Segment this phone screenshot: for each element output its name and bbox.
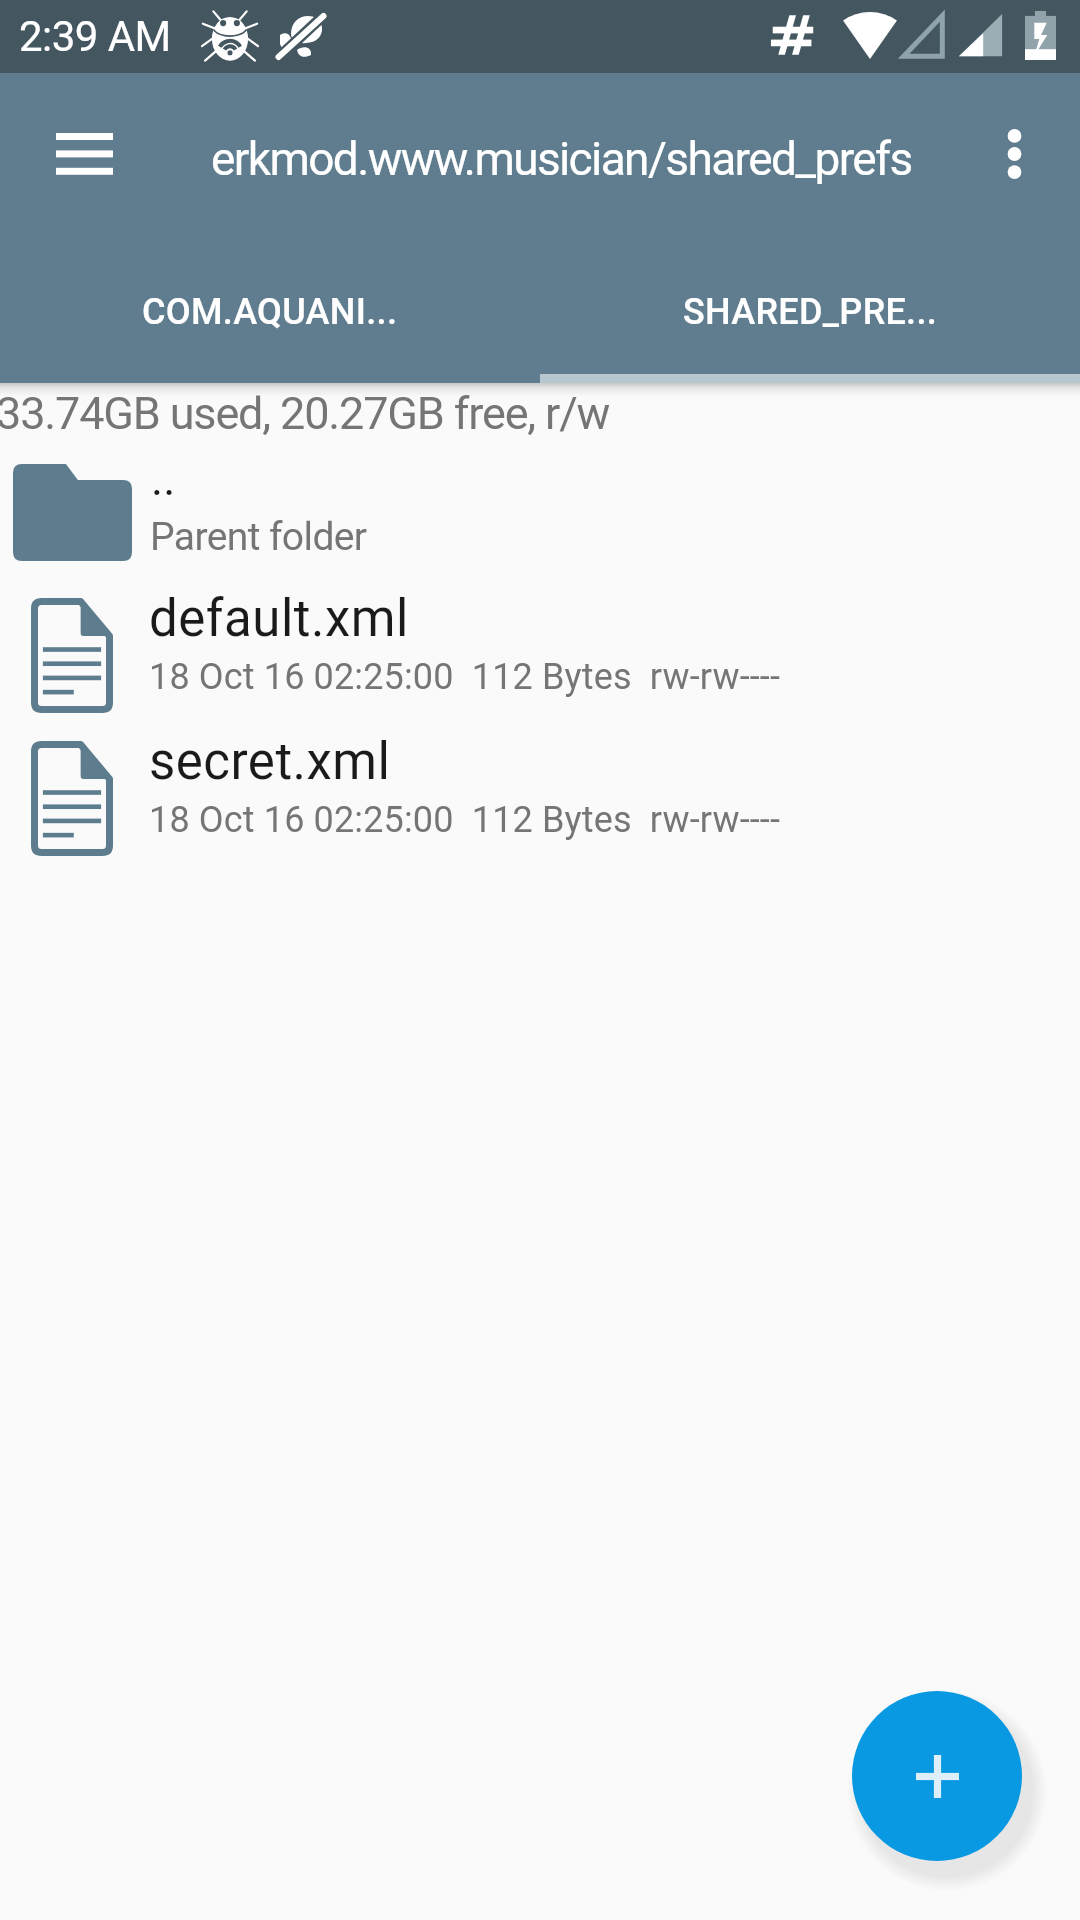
button[interactable]: default.xml — [0, 587, 1080, 724]
staticText: 33.74GB used, 20.27GB free, r/w — [0, 387, 610, 440]
button[interactable]: COM.AQUANI... — [0, 240, 540, 383]
button[interactable]: Open navigation menu — [40, 116, 128, 191]
staticText: Parent folder — [150, 514, 367, 560]
staticText: default.xml — [149, 589, 409, 649]
button[interactable]: Add — [852, 1691, 1022, 1861]
button[interactable]: secret.xml — [0, 730, 1080, 867]
button[interactable]: .. — [0, 443, 1080, 579]
staticText: erkmod.www.musician/shared_prefs — [211, 132, 912, 186]
staticText: secret.xml — [149, 732, 391, 792]
button[interactable]: SHARED_PRE... — [540, 240, 1080, 383]
staticText: COM.AQUANI... — [142, 291, 398, 333]
staticText: .. — [151, 452, 176, 506]
staticText: 18 Oct 16 02:25:00 112 Bytes rw-rw---- — [149, 656, 781, 698]
staticText: SHARED_PRE... — [683, 291, 938, 333]
button[interactable]: More options — [978, 116, 1050, 191]
staticText: 2:39 AM — [19, 12, 171, 61]
staticText: 18 Oct 16 02:25:00 112 Bytes rw-rw---- — [149, 799, 781, 841]
